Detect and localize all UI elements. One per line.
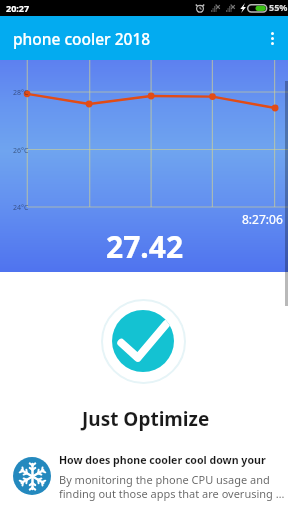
staticText: 27.42 (106, 226, 184, 267)
staticText: How does phone cooler cool down your (59, 453, 266, 467)
staticText: 24°C (13, 203, 29, 213)
button[interactable]: How does phone cooler cool down your (0, 450, 288, 502)
staticText: 28°C (13, 88, 29, 98)
staticText: phone cooler 2018 (13, 28, 151, 49)
staticText: 8:27:06 (242, 211, 283, 227)
staticText: 26°C (13, 146, 29, 156)
staticText: 20:27 (6, 2, 30, 14)
staticText: 55% (269, 1, 288, 13)
button[interactable]: More options (252, 16, 288, 60)
staticText: By monitoring the phone CPU usage and fi… (59, 472, 285, 501)
staticText: Just Optimize (82, 406, 210, 432)
